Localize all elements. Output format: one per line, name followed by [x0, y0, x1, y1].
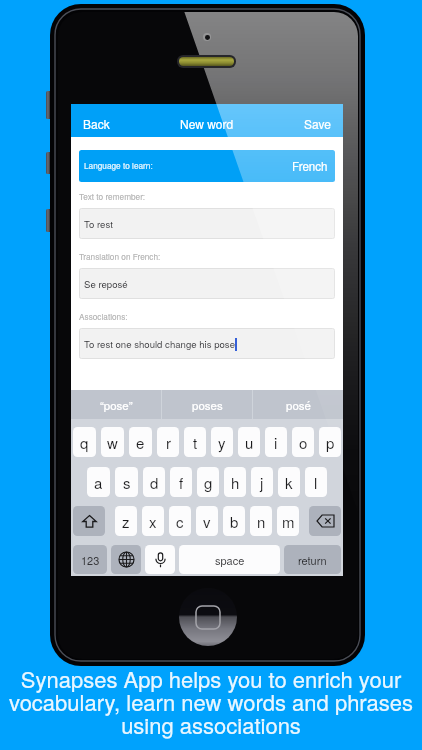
button[interactable]: l: [305, 467, 327, 497]
button[interactable]: i: [265, 427, 287, 457]
button[interactable]: q: [73, 427, 96, 457]
staticText: 123: [81, 552, 100, 568]
staticText: z: [122, 511, 130, 532]
button[interactable]: s: [115, 467, 138, 497]
button[interactable]: k: [278, 467, 300, 497]
button[interactable]: u: [238, 427, 260, 457]
button[interactable]: j: [251, 467, 273, 497]
button[interactable]: f: [170, 467, 192, 497]
button[interactable]: Backspace: [309, 506, 341, 536]
button[interactable]: To rest one should change his pose: [79, 328, 335, 359]
staticText: “pose”: [100, 397, 133, 413]
staticText: Synapses App helps you to enrich your vo…: [1, 663, 421, 741]
button[interactable]: a: [87, 467, 110, 497]
button[interactable]: g: [197, 467, 219, 497]
staticText: b: [230, 511, 239, 532]
staticText: Translation on French:: [79, 251, 161, 263]
staticText: space: [215, 552, 245, 568]
button[interactable]: o: [292, 427, 314, 457]
staticText: f: [179, 472, 184, 493]
staticText: Associations:: [79, 311, 128, 323]
button[interactable]: Language to learn:: [79, 150, 335, 182]
staticText: r: [166, 432, 171, 453]
button[interactable]: e: [129, 427, 152, 457]
button[interactable]: 123: [73, 545, 107, 574]
staticText: w: [107, 432, 118, 453]
staticText: s: [123, 472, 131, 493]
button[interactable]: c: [169, 506, 191, 536]
staticText: Se reposé: [84, 277, 128, 291]
staticText: a: [94, 472, 103, 493]
button[interactable]: x: [142, 506, 164, 536]
staticText: p: [326, 432, 335, 453]
staticText: l: [314, 472, 318, 493]
staticText: j: [260, 472, 264, 493]
button[interactable]: r: [157, 427, 179, 457]
staticText: To rest: [84, 217, 113, 231]
button[interactable]: Shift: [73, 506, 105, 536]
button[interactable]: b: [223, 506, 245, 536]
staticText: g: [204, 472, 213, 493]
button[interactable]: To rest: [79, 208, 335, 239]
staticText: v: [203, 511, 211, 532]
staticText: h: [231, 472, 240, 493]
staticText: posé: [286, 397, 311, 413]
button[interactable]: Back: [71, 104, 343, 137]
staticText: o: [299, 432, 308, 453]
staticText: Save: [304, 115, 331, 132]
staticText: New word: [180, 115, 234, 132]
button[interactable]: posé: [253, 390, 343, 419]
staticText: n: [257, 511, 266, 532]
button[interactable]: v: [196, 506, 218, 536]
staticText: k: [285, 472, 293, 493]
staticText: x: [149, 511, 157, 532]
button[interactable]: return: [284, 545, 341, 574]
staticText: y: [218, 432, 226, 453]
button[interactable]: h: [224, 467, 246, 497]
staticText: To rest one should change his pose: [84, 337, 235, 351]
staticText: i: [274, 432, 278, 453]
staticText: French: [292, 158, 328, 175]
button[interactable]: space: [179, 545, 280, 574]
staticText: m: [282, 511, 295, 532]
staticText: q: [80, 432, 89, 453]
staticText: Language to learn:: [84, 160, 153, 172]
button[interactable]: poses: [162, 390, 252, 419]
staticText: Text to remember:: [79, 191, 146, 203]
button[interactable]: m: [277, 506, 299, 536]
staticText: e: [136, 432, 145, 453]
staticText: return: [298, 552, 327, 568]
button[interactable]: Change keyboard: [111, 545, 141, 574]
button[interactable]: z: [115, 506, 137, 536]
button[interactable]: w: [101, 427, 124, 457]
staticText: Back: [83, 115, 110, 132]
button[interactable]: n: [250, 506, 272, 536]
button[interactable]: Dictate: [145, 545, 175, 574]
button[interactable]: y: [211, 427, 233, 457]
button[interactable]: “pose”: [71, 390, 161, 419]
button[interactable]: p: [319, 427, 341, 457]
staticText: d: [150, 472, 159, 493]
staticText: t: [193, 432, 198, 453]
button[interactable]: d: [143, 467, 165, 497]
staticText: u: [245, 432, 254, 453]
staticText: poses: [192, 397, 223, 413]
button[interactable]: Se reposé: [79, 268, 335, 299]
button[interactable]: t: [184, 427, 206, 457]
staticText: c: [176, 511, 184, 532]
